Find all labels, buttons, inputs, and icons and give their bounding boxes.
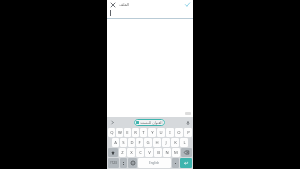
staticText: Y xyxy=(151,130,154,136)
staticText: English xyxy=(149,161,160,165)
button[interactable]: E xyxy=(124,128,131,137)
button[interactable]: I xyxy=(166,128,174,137)
staticText: V xyxy=(148,150,151,156)
staticText: العنوان للمستند xyxy=(140,120,163,125)
button[interactable]: F xyxy=(136,138,143,147)
button[interactable]: Q xyxy=(108,128,115,137)
button[interactable]: P xyxy=(184,128,192,137)
staticText: A xyxy=(114,140,117,146)
staticText: E xyxy=(126,130,129,136)
button[interactable]: W xyxy=(116,128,123,137)
button[interactable]: Enter xyxy=(180,158,192,168)
button[interactable]: S xyxy=(120,138,127,147)
button[interactable]: N xyxy=(163,148,171,157)
button[interactable]: ?123 xyxy=(108,158,119,168)
button[interactable]: G xyxy=(144,138,152,147)
staticText: I xyxy=(169,130,171,136)
button[interactable]: Y xyxy=(148,128,156,137)
staticText: O xyxy=(177,130,181,136)
staticText: D xyxy=(130,140,134,146)
staticText: P xyxy=(187,130,190,136)
button[interactable]: Shift xyxy=(108,148,118,157)
button[interactable]: K xyxy=(171,138,179,147)
staticText: T xyxy=(142,130,145,136)
button[interactable]: Emoji xyxy=(128,158,137,168)
button[interactable]: B xyxy=(154,148,162,157)
staticText: M xyxy=(174,150,178,156)
staticText: N xyxy=(165,150,169,156)
staticText: G xyxy=(146,140,150,146)
button[interactable]: More suggestions xyxy=(109,119,116,126)
button[interactable]: L xyxy=(180,138,188,147)
staticText: U xyxy=(159,130,163,136)
button[interactable]: Comma xyxy=(120,158,127,168)
staticText: L xyxy=(183,140,186,146)
button[interactable]: T xyxy=(140,128,147,137)
staticText: B xyxy=(157,150,160,156)
button[interactable]: X xyxy=(127,148,135,157)
button[interactable]: J xyxy=(162,138,170,147)
button[interactable]: العنوان للمستند xyxy=(134,119,165,126)
staticText: X xyxy=(130,150,133,156)
staticText: Q xyxy=(110,130,114,136)
button[interactable]: A xyxy=(112,138,119,147)
staticText: C xyxy=(139,150,142,156)
button[interactable]: Voice input xyxy=(184,119,191,126)
staticText: الملف xyxy=(119,2,130,7)
staticText: S xyxy=(122,140,125,146)
button[interactable]: V xyxy=(145,148,153,157)
staticText: K xyxy=(174,140,177,146)
button[interactable]: C xyxy=(136,148,144,157)
staticText: J xyxy=(165,140,167,146)
button[interactable]: M xyxy=(172,148,180,157)
button[interactable] xyxy=(107,8,193,19)
button[interactable]: Z xyxy=(119,148,126,157)
button[interactable]: U xyxy=(157,128,165,137)
button[interactable]: R xyxy=(132,128,139,137)
button[interactable]: Done xyxy=(184,1,191,8)
button[interactable]: English xyxy=(138,158,171,168)
button[interactable]: Close xyxy=(109,1,116,8)
button[interactable]: الملف xyxy=(119,1,130,8)
staticText: F xyxy=(138,140,141,146)
staticText: R xyxy=(134,130,137,136)
staticText: Z xyxy=(121,150,124,156)
button[interactable]: H xyxy=(153,138,161,147)
button[interactable]: D xyxy=(128,138,135,147)
staticText: ?123 xyxy=(110,161,117,165)
staticText: H xyxy=(155,140,159,146)
button[interactable]: O xyxy=(175,128,183,137)
button[interactable]: Backspace xyxy=(181,148,192,157)
button[interactable]: Period xyxy=(172,158,179,168)
staticText: W xyxy=(118,130,122,136)
